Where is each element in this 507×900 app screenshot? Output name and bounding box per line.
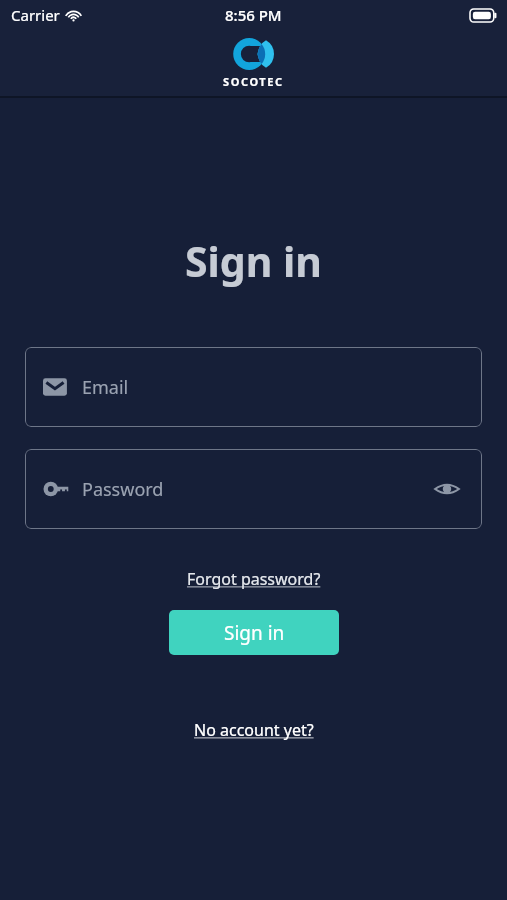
staticText: Forgot password?: [187, 568, 321, 590]
button[interactable]: Forgot password?: [183, 566, 325, 592]
staticText: SOCOTEC: [223, 74, 284, 89]
button[interactable]: Show password: [430, 472, 464, 506]
button[interactable]: Sign in: [169, 610, 339, 655]
staticText: No account yet?: [194, 719, 314, 741]
button[interactable]: Email: [25, 347, 482, 427]
staticText: 8:56 PM: [225, 5, 282, 25]
staticText: Email: [82, 375, 129, 400]
button[interactable]: No account yet?: [190, 717, 318, 743]
staticText: Sign in: [224, 620, 285, 646]
staticText: Carrier: [11, 5, 60, 25]
staticText: Sign in: [0, 233, 507, 289]
button[interactable]: Password: [25, 449, 482, 529]
staticText: Password: [82, 477, 164, 502]
